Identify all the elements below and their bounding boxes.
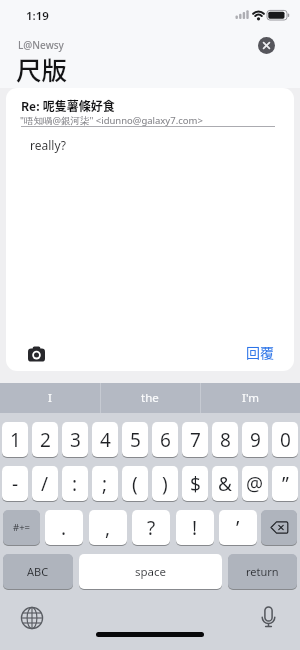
staticText: .: [61, 515, 67, 541]
button[interactable]: 9: [242, 422, 268, 457]
button[interactable]: @: [242, 466, 268, 501]
staticText: (: [132, 471, 138, 497]
staticText: I'm: [242, 390, 259, 406]
button[interactable]: I: [0, 383, 100, 413]
button[interactable]: (: [122, 466, 148, 501]
button[interactable]: &: [212, 466, 238, 501]
button[interactable]: -: [2, 466, 28, 501]
staticText: L@Newsy: [18, 38, 64, 52]
button[interactable]: [17, 603, 46, 632]
staticText: ’: [236, 515, 240, 541]
staticText: I: [48, 390, 52, 406]
button[interactable]: ?: [132, 510, 170, 545]
button[interactable]: 5: [122, 422, 148, 457]
staticText: 6: [160, 427, 171, 453]
staticText: ”: [282, 471, 289, 497]
staticText: Re: 呢隻薯條好食: [21, 97, 115, 114]
staticText: 1:19: [26, 8, 49, 24]
staticText: the: [141, 390, 159, 406]
staticText: "唔知喎@銀河柒" <idunno@galaxy7.com>: [20, 114, 203, 127]
staticText: ?: [147, 515, 156, 541]
button[interactable]: 4: [92, 422, 118, 457]
staticText: really?: [30, 137, 66, 153]
button[interactable]: ’: [219, 510, 257, 545]
staticText: 2: [40, 427, 51, 453]
button[interactable]: 回覆: [234, 339, 286, 365]
staticText: space: [135, 564, 167, 580]
staticText: 回覆: [246, 342, 274, 362]
button[interactable]: the: [100, 383, 200, 413]
button[interactable]: 6: [152, 422, 178, 457]
button[interactable]: ,: [89, 510, 127, 545]
staticText: 7: [190, 427, 201, 453]
staticText: ;: [102, 471, 108, 497]
button[interactable]: !: [176, 510, 214, 545]
button[interactable]: [254, 602, 282, 632]
button[interactable]: 8: [212, 422, 238, 457]
staticText: ,: [105, 515, 111, 541]
button[interactable]: /: [32, 466, 58, 501]
button[interactable]: [24, 342, 50, 366]
button[interactable]: space: [79, 554, 222, 589]
staticText: ): [162, 471, 168, 497]
staticText: 8: [220, 427, 231, 453]
button[interactable]: 7: [182, 422, 208, 457]
button[interactable]: 2: [32, 422, 58, 457]
staticText: 3: [70, 427, 81, 453]
button[interactable]: $: [182, 466, 208, 501]
button[interactable]: return: [228, 554, 297, 589]
button[interactable]: ;: [92, 466, 118, 501]
staticText: ABC: [27, 564, 49, 579]
staticText: 0: [280, 427, 291, 453]
button[interactable]: #+=: [3, 510, 40, 545]
staticText: $: [190, 471, 201, 497]
button[interactable]: [261, 510, 297, 545]
button[interactable]: 0: [272, 422, 298, 457]
button[interactable]: 1: [2, 422, 28, 457]
staticText: #+=: [13, 521, 31, 534]
button[interactable]: ”: [272, 466, 298, 501]
button[interactable]: [258, 37, 275, 54]
staticText: -: [12, 471, 19, 497]
staticText: &: [218, 471, 232, 497]
staticText: 尺版: [16, 50, 68, 87]
staticText: 1: [10, 427, 21, 453]
button[interactable]: :: [62, 466, 88, 501]
button[interactable]: ): [152, 466, 178, 501]
staticText: /: [41, 471, 49, 497]
button[interactable]: .: [45, 510, 83, 545]
button[interactable]: 3: [62, 422, 88, 457]
staticText: :: [72, 471, 78, 497]
button[interactable]: I'm: [200, 383, 300, 413]
staticText: 5: [130, 427, 141, 453]
staticText: return: [246, 564, 279, 579]
button[interactable]: ABC: [3, 554, 73, 589]
staticText: !: [192, 515, 198, 541]
staticText: @: [246, 471, 264, 497]
staticText: 9: [250, 427, 261, 453]
staticText: 4: [100, 427, 111, 453]
